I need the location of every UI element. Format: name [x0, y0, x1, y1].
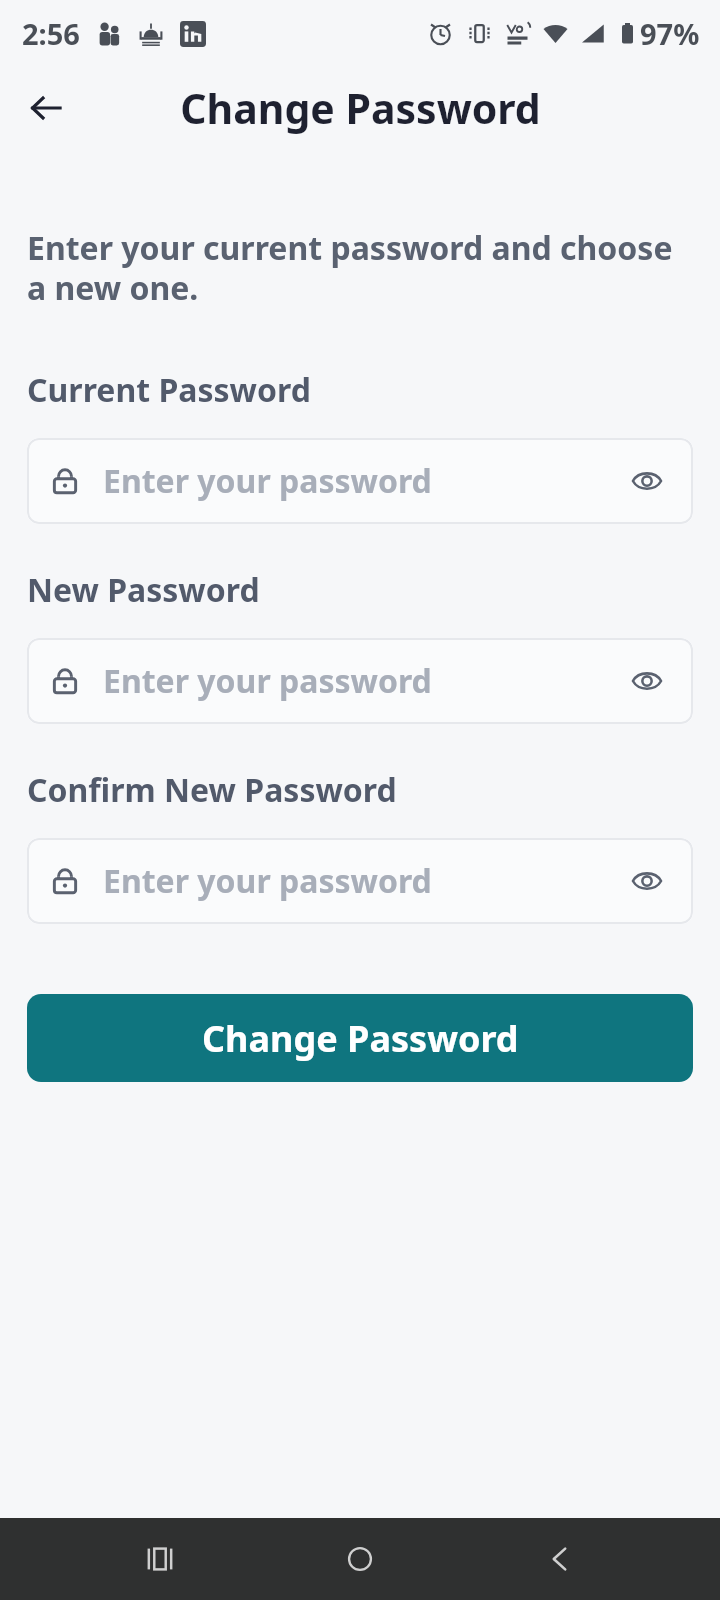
button[interactable]: Enter your password [27, 638, 693, 724]
button[interactable]: Enter your password [27, 838, 693, 924]
button[interactable]: Show password [625, 659, 669, 703]
staticText: Current Password [27, 368, 311, 412]
staticText: New Password [27, 568, 260, 612]
staticText: Confirm New Password [27, 768, 397, 812]
button[interactable]: Show password [625, 859, 669, 903]
staticText: Enter your password [103, 859, 625, 903]
staticText: Enter your password [103, 459, 625, 503]
staticText: 2:56 [22, 14, 80, 53]
staticText: Change Password [180, 80, 541, 136]
button[interactable]: Back [520, 1519, 600, 1599]
button[interactable]: Back [18, 80, 74, 136]
staticText: Enter your password [103, 659, 625, 703]
staticText: Change Password [202, 1014, 519, 1063]
button[interactable]: Recent apps [120, 1519, 200, 1599]
staticText: Enter your current password and choose a… [27, 226, 693, 310]
button[interactable]: Show password [625, 459, 669, 503]
button[interactable]: Enter your password [27, 438, 693, 524]
button[interactable]: Change Password [27, 994, 693, 1082]
button[interactable]: Home [320, 1519, 400, 1599]
staticText: 97% [640, 14, 700, 53]
